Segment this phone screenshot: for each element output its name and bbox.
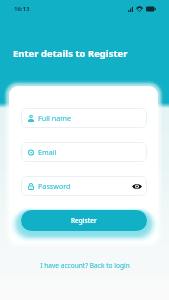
button[interactable]: Full name bbox=[21, 108, 147, 128]
other: Battery bbox=[146, 6, 156, 12]
other: Wi-Fi bbox=[136, 6, 143, 12]
other: Mobile signal bbox=[128, 7, 133, 12]
staticText: 16:13 bbox=[14, 5, 30, 13]
staticText: Password bbox=[38, 181, 71, 191]
button[interactable]: Email bbox=[21, 142, 147, 162]
staticText: Full name bbox=[38, 113, 71, 123]
button[interactable]: Password bbox=[21, 176, 147, 196]
button[interactable]: I have account? Back to login bbox=[36, 259, 134, 272]
staticText: Email bbox=[38, 147, 57, 157]
staticText: Register bbox=[71, 216, 97, 225]
button[interactable]: Register bbox=[21, 210, 147, 231]
other: Show password bbox=[132, 183, 142, 190]
staticText: I have account? Back to login bbox=[40, 261, 130, 270]
staticText: Enter details to Register bbox=[13, 47, 128, 60]
